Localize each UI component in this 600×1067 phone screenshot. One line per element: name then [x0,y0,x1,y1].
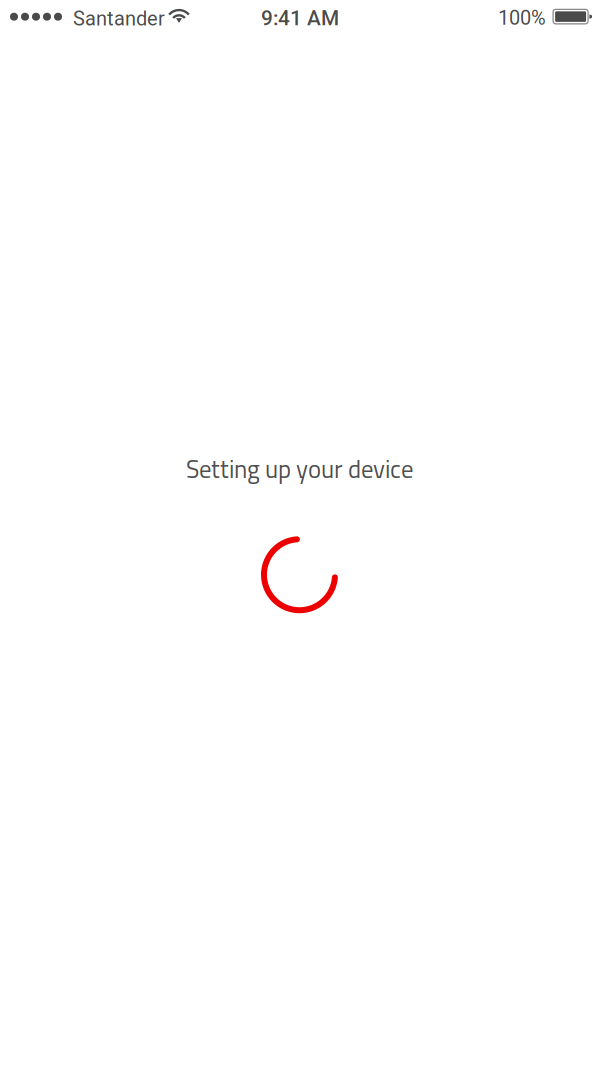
staticText: Santander [73,7,165,30]
staticText: 100% [498,6,546,29]
staticText: Setting up your device [186,450,414,488]
staticText: 9:41 AM [261,6,339,30]
